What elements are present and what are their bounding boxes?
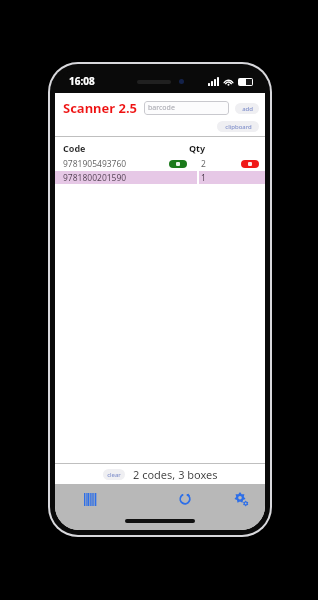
staticText: 2 <box>201 158 206 170</box>
staticText: 16:08 <box>69 74 95 88</box>
button[interactable]: Refresh <box>163 484 207 514</box>
staticText: 2 codes, 3 boxes <box>133 467 218 482</box>
button[interactable]: clipboard <box>217 121 259 132</box>
staticText: 9781905493760 <box>63 158 127 170</box>
staticText: clipboard <box>225 123 252 131</box>
button[interactable]: clear <box>103 469 125 480</box>
staticText: add <box>242 105 253 113</box>
staticText: 9781800201590 <box>63 172 127 184</box>
button[interactable]: Increase quantity <box>169 160 187 168</box>
button[interactable]: add <box>235 103 259 114</box>
staticText: Qty <box>189 142 257 154</box>
button[interactable]: 9781905493760 <box>55 157 265 170</box>
button[interactable]: barcode <box>144 101 229 115</box>
button[interactable]: Decrease quantity <box>241 160 259 168</box>
staticText: clear <box>107 471 121 479</box>
button[interactable]: Scan barcode <box>55 484 127 514</box>
staticText: barcode <box>148 103 175 113</box>
button[interactable]: 9781800201590 <box>55 171 265 184</box>
button[interactable]: Settings <box>221 484 261 514</box>
staticText: 1 <box>201 172 206 184</box>
staticText: Scanner 2.5 <box>63 99 138 117</box>
staticText: Code <box>63 142 189 154</box>
